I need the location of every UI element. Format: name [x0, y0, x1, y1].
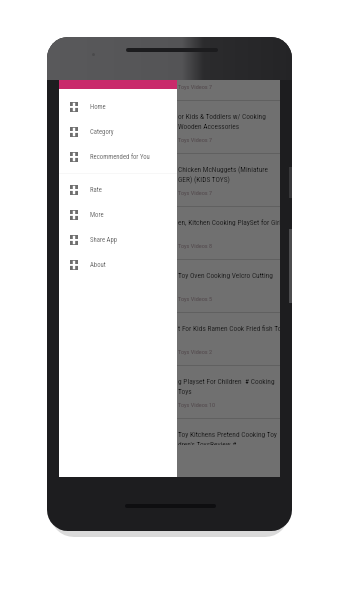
button[interactable]: t For Kids Ramen Cook Fried fish Toy: [59, 313, 280, 365]
staticText: t For Kids Ramen Cook Fried fish Toy: [178, 324, 280, 333]
button[interactable]: or Kids & Toddlers w/ Cooking Wooden Acc…: [59, 101, 280, 153]
button[interactable]: menu icon: [59, 202, 177, 227]
button[interactable]: menu icon: [59, 119, 177, 144]
staticText: Category: [90, 128, 114, 136]
staticText: Chicken McNuggets (Miniature GER) (KIDS …: [178, 165, 268, 184]
other: menu icon: [70, 127, 78, 137]
button[interactable]: Kitchen Set Cooking Toys Play: [59, 80, 280, 100]
button[interactable]: en, Kitchen Cooking PlaySet for Girls: [59, 207, 280, 259]
button[interactable]: Toy Kitchens Pretend Cooking Toy dren's …: [59, 419, 280, 445]
staticText: Toys Videos 7: [178, 83, 213, 90]
staticText: Toys Videos 10: [178, 401, 216, 408]
staticText: g Playset For Children # Cooking Toys: [178, 377, 275, 396]
other: menu icon: [70, 152, 78, 162]
button[interactable]: menu icon: [59, 177, 177, 202]
other: menu icon: [70, 210, 78, 220]
staticText: About: [90, 261, 106, 269]
staticText: Toys Videos 7: [178, 136, 213, 143]
staticText: Recommended for You: [90, 153, 150, 161]
staticText: Toys Videos 5: [178, 295, 213, 302]
button[interactable]: menu icon: [59, 144, 177, 169]
other: menu icon: [70, 260, 78, 270]
button[interactable]: Chicken McNuggets (Miniature GER) (KIDS …: [59, 154, 280, 206]
staticText: Toys Videos 8: [178, 242, 213, 249]
button[interactable]: menu icon: [59, 94, 177, 119]
staticText: Toys Videos 7: [178, 189, 213, 196]
other: menu icon: [70, 102, 78, 112]
other: menu icon: [70, 235, 78, 245]
staticText: Toy Oven Cooking Velcro Cutting: [178, 271, 273, 280]
staticText: or Kids & Toddlers w/ Cooking Wooden Acc…: [178, 112, 266, 131]
other: menu icon: [70, 185, 78, 195]
button[interactable]: g Playset For Children # Cooking Toys: [59, 366, 280, 418]
button[interactable]: Toy Oven Cooking Velcro Cutting: [59, 260, 280, 312]
button[interactable]: menu icon: [59, 252, 177, 277]
staticText: Toy Kitchens Pretend Cooking Toy dren's …: [178, 430, 277, 445]
staticText: Share App: [90, 236, 117, 244]
button[interactable]: menu icon: [59, 227, 177, 252]
staticText: Rate: [90, 186, 102, 194]
staticText: Toys Videos 2: [178, 348, 213, 355]
staticText: Home: [90, 103, 106, 111]
staticText: en, Kitchen Cooking PlaySet for Girls: [178, 218, 280, 227]
staticText: More: [90, 211, 104, 219]
